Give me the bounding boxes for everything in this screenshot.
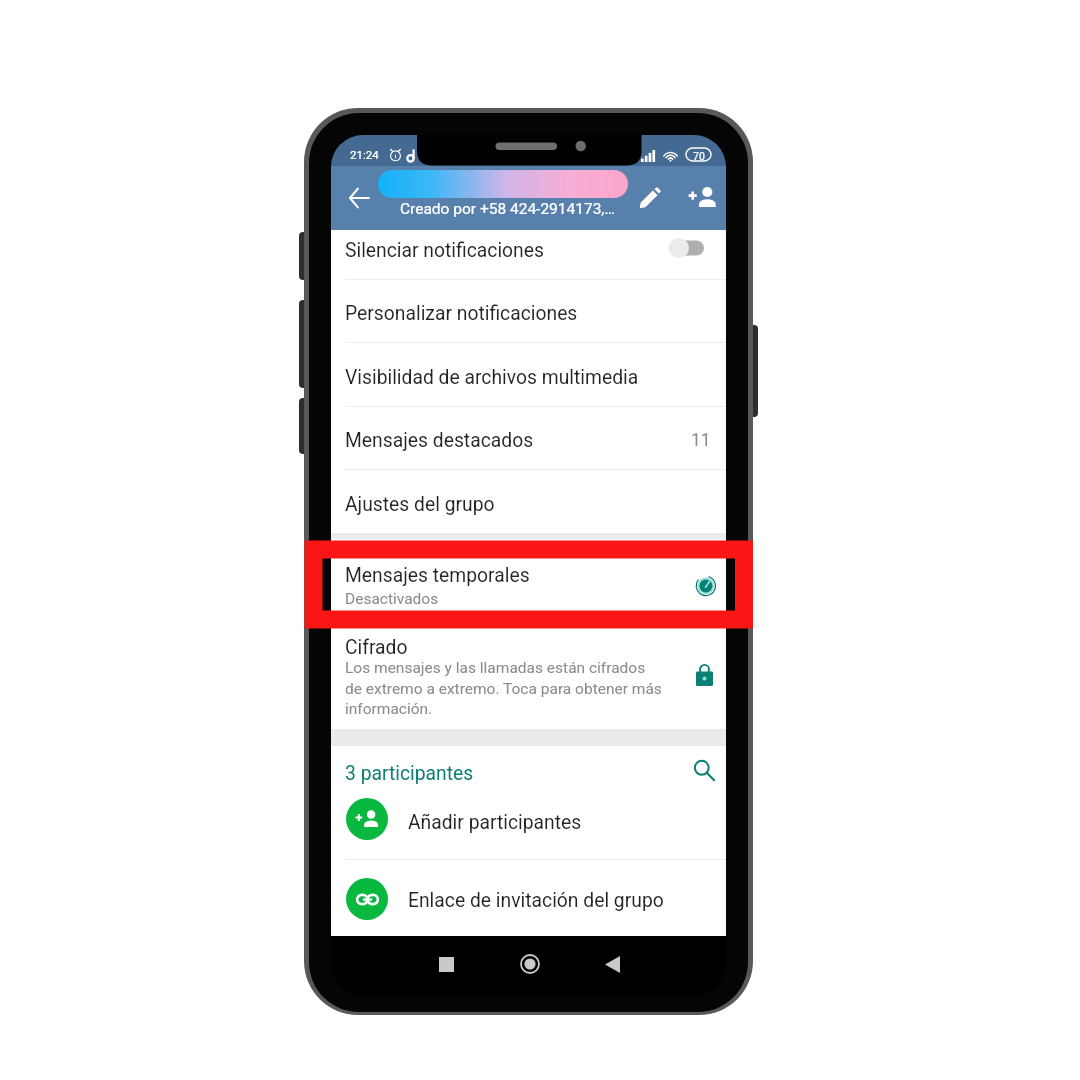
- staticText: Desactivados: [345, 590, 439, 608]
- button[interactable]: Search participants: [684, 750, 724, 790]
- button[interactable]: Recent apps: [426, 944, 466, 984]
- staticText: 3 participantes: [345, 762, 474, 785]
- button[interactable]: Mensajes destacados: [331, 406, 726, 469]
- staticText: 11: [691, 430, 711, 451]
- button[interactable]: Personalizar notificaciones: [331, 279, 726, 342]
- staticText: Creado por +58 424-2914173,…: [400, 200, 615, 218]
- staticText: Enlace de invitación del grupo: [408, 889, 664, 912]
- staticText: Silenciar notificaciones: [345, 239, 544, 262]
- button[interactable]: Mensajes temporales: [331, 539, 726, 611]
- staticText: 21:24: [350, 148, 379, 161]
- button[interactable]: Visibilidad de archivos multimedia: [331, 342, 726, 406]
- staticText: Mensajes destacados: [345, 429, 534, 452]
- button[interactable]: Add participant: [680, 175, 726, 221]
- staticText: Ajustes del grupo: [345, 493, 495, 516]
- button[interactable]: Silenciar notificaciones: [331, 230, 726, 279]
- staticText: Cifrado: [345, 636, 408, 659]
- staticText: 70: [693, 150, 705, 162]
- button[interactable]: Añadir participantes: [331, 798, 726, 859]
- button[interactable]: Enlace de invitación del grupo: [331, 859, 726, 936]
- button[interactable]: Cifrado: [331, 612, 726, 729]
- staticText: Mensajes temporales: [345, 564, 530, 587]
- staticText: Personalizar notificaciones: [345, 302, 578, 325]
- staticText: Añadir participantes: [408, 811, 582, 834]
- staticText: Visibilidad de archivos multimedia: [345, 366, 639, 389]
- button[interactable]: Back: [592, 944, 632, 984]
- button[interactable]: Ajustes del grupo: [331, 469, 726, 534]
- button[interactable]: Edit group name: [627, 175, 673, 221]
- button[interactable]: Back: [334, 174, 382, 222]
- button[interactable]: Home: [510, 944, 550, 984]
- staticText: Los mensajes y las llamadas están cifrad…: [345, 659, 662, 718]
